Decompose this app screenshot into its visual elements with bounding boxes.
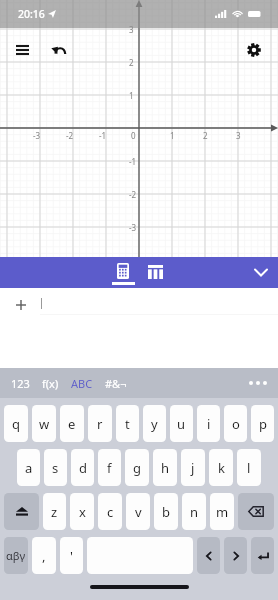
button[interactable]: p — [251, 405, 274, 442]
staticText: n — [190, 503, 199, 521]
staticText: -3 — [129, 222, 137, 233]
staticText: x — [79, 503, 86, 521]
button[interactable]: g — [125, 449, 149, 486]
button[interactable]: Backspace — [238, 493, 274, 530]
button[interactable]: d — [71, 449, 94, 486]
button[interactable]: ' — [60, 537, 83, 574]
button[interactable]: f(x) — [39, 372, 62, 395]
button[interactable]: b — [154, 493, 178, 530]
button[interactable]: l — [237, 449, 261, 486]
staticText: s — [52, 459, 59, 477]
button[interactable]: 123 — [8, 372, 33, 395]
button[interactable]: Undo — [40, 32, 76, 68]
staticText: -1 — [129, 156, 137, 167]
staticText: ' — [70, 547, 73, 565]
staticText: j — [191, 459, 195, 477]
staticText: αβγ — [6, 548, 26, 563]
button[interactable]: n — [182, 493, 206, 530]
staticText: o — [232, 415, 240, 433]
button[interactable]: ABC — [68, 372, 96, 395]
staticText: -1 — [99, 130, 107, 141]
button[interactable]: Collapse — [244, 257, 278, 288]
button[interactable]: t — [116, 405, 139, 442]
button[interactable]: c — [98, 493, 122, 530]
staticText: z — [51, 503, 58, 521]
staticText: r — [97, 415, 103, 433]
button[interactable]: #&¬ — [102, 372, 130, 395]
button[interactable]: y — [143, 405, 166, 442]
staticText: 123 — [11, 376, 30, 391]
staticText: t — [125, 415, 130, 433]
staticText: 20:16 — [18, 7, 45, 21]
staticText: c — [107, 503, 114, 521]
staticText: 1 — [170, 130, 175, 141]
button[interactable]: k — [209, 449, 233, 486]
staticText: b — [162, 503, 170, 521]
staticText: u — [177, 415, 186, 433]
button[interactable]: More options — [242, 368, 274, 398]
staticText: f — [107, 459, 112, 477]
button[interactable]: q — [4, 405, 28, 442]
staticText: , — [42, 547, 46, 565]
button[interactable]: a — [17, 449, 40, 486]
staticText: -2 — [129, 189, 137, 200]
button[interactable]: , — [32, 537, 56, 574]
button[interactable]: Calculator — [106, 257, 140, 288]
button[interactable]: v — [126, 493, 150, 530]
button[interactable]: z — [43, 493, 66, 530]
staticText: ABC — [71, 376, 93, 391]
button[interactable]: Enter — [251, 537, 274, 574]
staticText: q — [12, 415, 20, 433]
staticText: g — [133, 459, 141, 477]
staticText: h — [161, 459, 170, 477]
button[interactable]: Menu — [4, 32, 40, 68]
button[interactable]: j — [181, 449, 205, 486]
staticText: -2 — [66, 130, 74, 141]
button[interactable]: Left — [197, 537, 220, 574]
staticText: #&¬ — [105, 376, 127, 391]
button[interactable]: i — [197, 405, 220, 442]
button[interactable]: s — [44, 449, 67, 486]
staticText: i — [207, 415, 211, 433]
button[interactable]: Add input — [5, 289, 36, 320]
staticText: y — [151, 415, 158, 433]
button[interactable]: e — [60, 405, 84, 442]
button[interactable]: Settings — [236, 32, 272, 68]
staticText: 0 — [131, 130, 136, 141]
staticText: 2 — [129, 57, 134, 68]
staticText: w — [39, 415, 50, 433]
staticText: e — [68, 415, 76, 433]
button[interactable]: u — [170, 405, 193, 442]
staticText: a — [25, 459, 33, 477]
button[interactable]: f — [98, 449, 121, 486]
staticText: 1 — [129, 90, 134, 101]
staticText: v — [135, 503, 142, 521]
button[interactable]: Greek letters — [4, 537, 28, 574]
button[interactable]: x — [70, 493, 94, 530]
staticText: m — [216, 503, 229, 521]
button[interactable]: w — [32, 405, 56, 442]
button[interactable]: m — [210, 493, 234, 530]
staticText: -3 — [33, 130, 41, 141]
button[interactable]: Table — [140, 257, 170, 288]
staticText: l — [247, 459, 251, 477]
staticText: 2 — [203, 130, 208, 141]
button[interactable]: Right — [224, 537, 247, 574]
staticText: d — [79, 459, 87, 477]
staticText: p — [259, 415, 267, 433]
button[interactable]: o — [224, 405, 247, 442]
button[interactable]: h — [153, 449, 177, 486]
staticText: 3 — [129, 24, 134, 35]
staticText: 3 — [236, 130, 241, 141]
button[interactable]: Shift — [4, 493, 39, 530]
button[interactable]: r — [88, 405, 112, 442]
staticText: k — [218, 459, 225, 477]
staticText: f(x) — [42, 376, 59, 391]
